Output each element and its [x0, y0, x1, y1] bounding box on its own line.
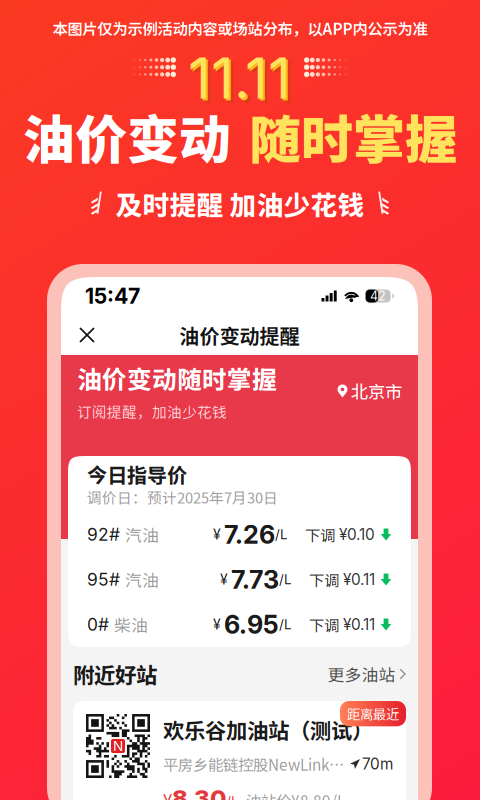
staticText: 下调	[309, 568, 339, 591]
staticText: 11.11	[188, 44, 291, 112]
staticText: 11.11	[190, 46, 293, 114]
staticText: 柴油	[114, 612, 148, 636]
staticText: ¥	[213, 526, 221, 543]
staticText: 92#	[87, 524, 120, 545]
staticText: 8.30	[172, 784, 226, 800]
staticText: 11.11	[192, 48, 295, 116]
staticText: 油价变动提醒	[179, 320, 299, 349]
button[interactable]: 关闭	[67, 315, 107, 355]
staticText: 15:47	[85, 283, 140, 309]
staticText: 距离最近	[347, 704, 399, 723]
staticText: 7.26	[224, 519, 275, 550]
button[interactable]: 更多油站	[327, 662, 406, 686]
staticText: 及时提醒 加油少花钱	[115, 184, 364, 223]
staticText: ¥0.11	[343, 570, 375, 589]
staticText: 0#	[87, 614, 109, 635]
staticText: 42	[370, 288, 386, 304]
staticText: N	[113, 738, 123, 754]
staticText: /L	[226, 794, 239, 800]
staticText: 附近好站	[73, 659, 157, 689]
staticText: 7.73	[231, 564, 279, 595]
staticText: ¥0.10	[339, 525, 375, 544]
staticText: 6.95	[224, 609, 279, 640]
staticText: 汽油	[125, 522, 159, 546]
staticText: 油价变动随时掌握	[77, 360, 277, 396]
staticText: 下调	[305, 523, 335, 546]
staticText: 本图片仅为示例活动内容或场站分布，以APP内公示为准	[52, 17, 427, 39]
staticText: /L	[279, 571, 292, 587]
staticText: 95#	[87, 569, 120, 590]
staticText: ¥	[213, 616, 221, 633]
button[interactable]: 北京市	[336, 378, 402, 404]
staticText: 平房乡能链控股NewLink惠通时…	[163, 753, 346, 775]
staticText: 更多油站	[327, 662, 395, 686]
staticText: 油站价¥8.89/L	[246, 790, 345, 800]
button[interactable]: N	[73, 701, 406, 800]
staticText: 订阅提醒，加油少花钱	[77, 401, 227, 422]
staticText: 汽油	[125, 567, 159, 591]
staticText: 今日指导价	[87, 459, 187, 488]
staticText: ¥0.11	[343, 615, 375, 634]
staticText: 北京市	[351, 378, 402, 404]
staticText: 70m	[362, 755, 393, 773]
staticText: /L	[279, 616, 292, 632]
staticText: /L	[275, 526, 288, 542]
staticText: 调价日：预计2025年7月30日	[87, 486, 278, 508]
staticText: 油价变动	[23, 99, 231, 174]
staticText: 下调	[309, 613, 339, 636]
staticText: 欢乐谷加油站（测试）	[163, 714, 373, 745]
staticText: 随时掌握	[249, 99, 457, 174]
staticText: ¥	[163, 791, 172, 800]
staticText: ¥	[220, 571, 228, 588]
